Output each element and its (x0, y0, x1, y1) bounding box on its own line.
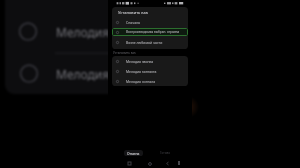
staticText: Мелодия (56, 24, 110, 40)
button[interactable]: Мелодия звонка (112, 56, 188, 66)
staticText: Возле любимой части (126, 40, 163, 45)
button[interactable]: Мелодия контакта (112, 66, 188, 76)
button[interactable]: Мелодия сигнала (112, 76, 188, 86)
button[interactable]: Home (148, 162, 152, 166)
staticText: Готово (160, 151, 171, 155)
staticText: Мелодия контакта (126, 69, 157, 74)
staticText: Мелодия звонка (126, 59, 154, 64)
button[interactable]: Готово (159, 151, 172, 155)
button[interactable]: Recent apps (128, 162, 131, 165)
button[interactable]: Возле любимой части (112, 37, 188, 47)
staticText: Установить как (113, 51, 136, 55)
staticText: Сначала (126, 20, 140, 25)
button[interactable]: Back (166, 162, 169, 165)
staticText: Мелодия (56, 66, 110, 82)
button[interactable]: Отмена (124, 150, 143, 156)
button[interactable]: Воспроизводимая выбран. отрывка (112, 28, 188, 36)
staticText: Мелодия сигнала (126, 79, 156, 84)
staticText: Установить как (118, 10, 149, 15)
staticText: Воспроизводимая выбран. отрывка (126, 30, 180, 34)
staticText: Отмена (127, 151, 140, 155)
button[interactable]: Сначала (112, 17, 188, 27)
